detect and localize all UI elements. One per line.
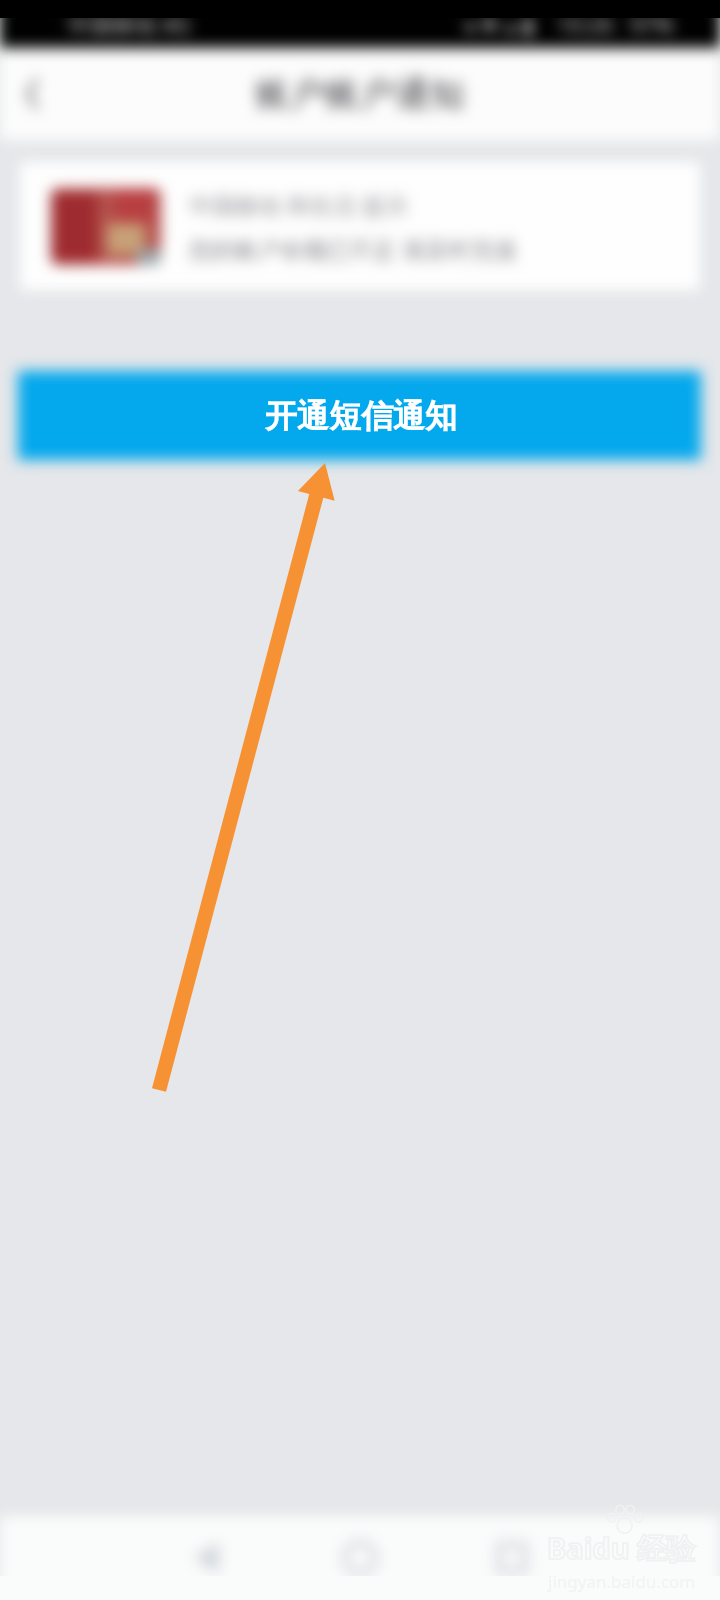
staticText: 97%: [630, 9, 674, 39]
staticText: 10:26: [557, 9, 614, 39]
button[interactable]: 中国移动 和生活 提示: [20, 162, 700, 290]
button[interactable]: Home: [320, 1518, 400, 1598]
button[interactable]: Back: [168, 1518, 248, 1598]
button[interactable]: Back: [6, 68, 58, 120]
button[interactable]: Recents: [472, 1518, 552, 1598]
staticText: 中国移动 和生活 提示: [189, 189, 408, 220]
staticText: 您的账户余额已不足 请及时充值: [189, 233, 517, 264]
staticText: 中国移动 4G: [68, 9, 191, 39]
staticText: 账户账户通知: [255, 72, 465, 116]
staticText: ◂ ❖ ▴ ▮: [463, 9, 535, 39]
button[interactable]: 开通短信通知: [22, 371, 699, 461]
staticText: 开通短信通知: [265, 396, 457, 436]
staticText: Baidu 经验: [547, 1528, 696, 1568]
